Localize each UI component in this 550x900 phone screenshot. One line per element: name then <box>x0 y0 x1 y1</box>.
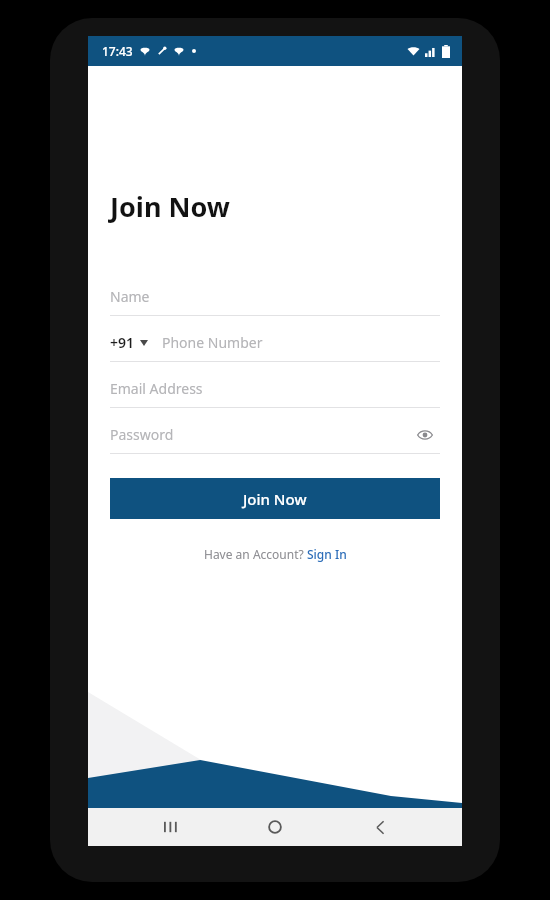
button[interactable]: Password <box>110 416 440 462</box>
button[interactable]: Join Now <box>110 478 440 519</box>
staticText: Name <box>110 287 150 306</box>
staticText: 17:43 <box>102 43 133 59</box>
button[interactable]: Back <box>358 808 402 846</box>
staticText: Phone Number <box>162 333 263 352</box>
staticText: Sign In <box>307 546 347 562</box>
button[interactable]: Name <box>110 278 440 324</box>
staticText: Join Now <box>110 188 230 225</box>
staticText: Password <box>110 425 174 444</box>
button[interactable]: Email Address <box>110 370 440 416</box>
staticText: Email Address <box>110 379 203 398</box>
button[interactable]: Show password <box>410 420 440 450</box>
button[interactable]: Sign In <box>307 546 347 562</box>
button[interactable]: Home <box>253 808 297 846</box>
staticText: +91 <box>110 333 135 352</box>
button[interactable]: Recent apps <box>149 808 193 846</box>
staticText: Have an Account? <box>204 546 307 562</box>
button[interactable]: +91 <box>110 324 440 370</box>
staticText: Join Now <box>243 489 307 509</box>
